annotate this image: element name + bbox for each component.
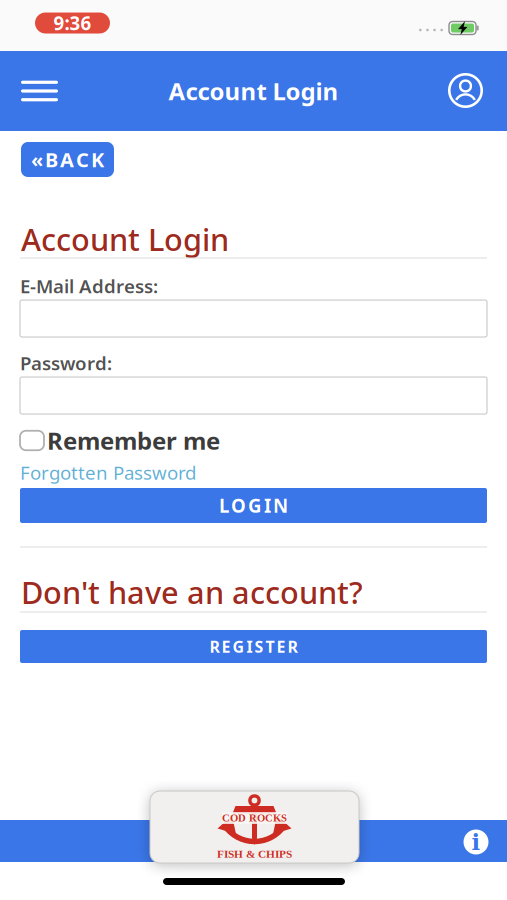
staticText: FISH & CHIPS — [217, 848, 292, 860]
staticText: Forgotten Password — [20, 460, 196, 485]
staticText: Account Login — [21, 219, 229, 259]
button[interactable]: Menu — [17, 71, 61, 111]
button[interactable]: Forgotten Password — [20, 460, 196, 485]
staticText: « B A C K — [31, 146, 104, 173]
staticText: L O G I N — [219, 493, 288, 518]
staticText: 9:36 — [53, 11, 91, 35]
button[interactable]: Account — [447, 72, 483, 108]
button[interactable]: Remember me — [20, 425, 487, 456]
staticText: E-Mail Address: — [20, 274, 158, 298]
staticText: Account Login — [168, 75, 338, 107]
staticText: Remember me — [47, 425, 220, 456]
staticText: COD ROCKS — [222, 812, 287, 824]
button[interactable]: R E G I S T E R — [20, 630, 487, 663]
staticText: i — [471, 829, 480, 855]
staticText: R E G I S T E R — [209, 636, 297, 657]
button[interactable]: L O G I N — [20, 488, 487, 523]
button[interactable]: Info — [463, 829, 488, 854]
staticText: Don't have an account? — [21, 572, 363, 612]
button[interactable]: « B A C K — [21, 142, 114, 177]
staticText: Password: — [20, 351, 112, 375]
